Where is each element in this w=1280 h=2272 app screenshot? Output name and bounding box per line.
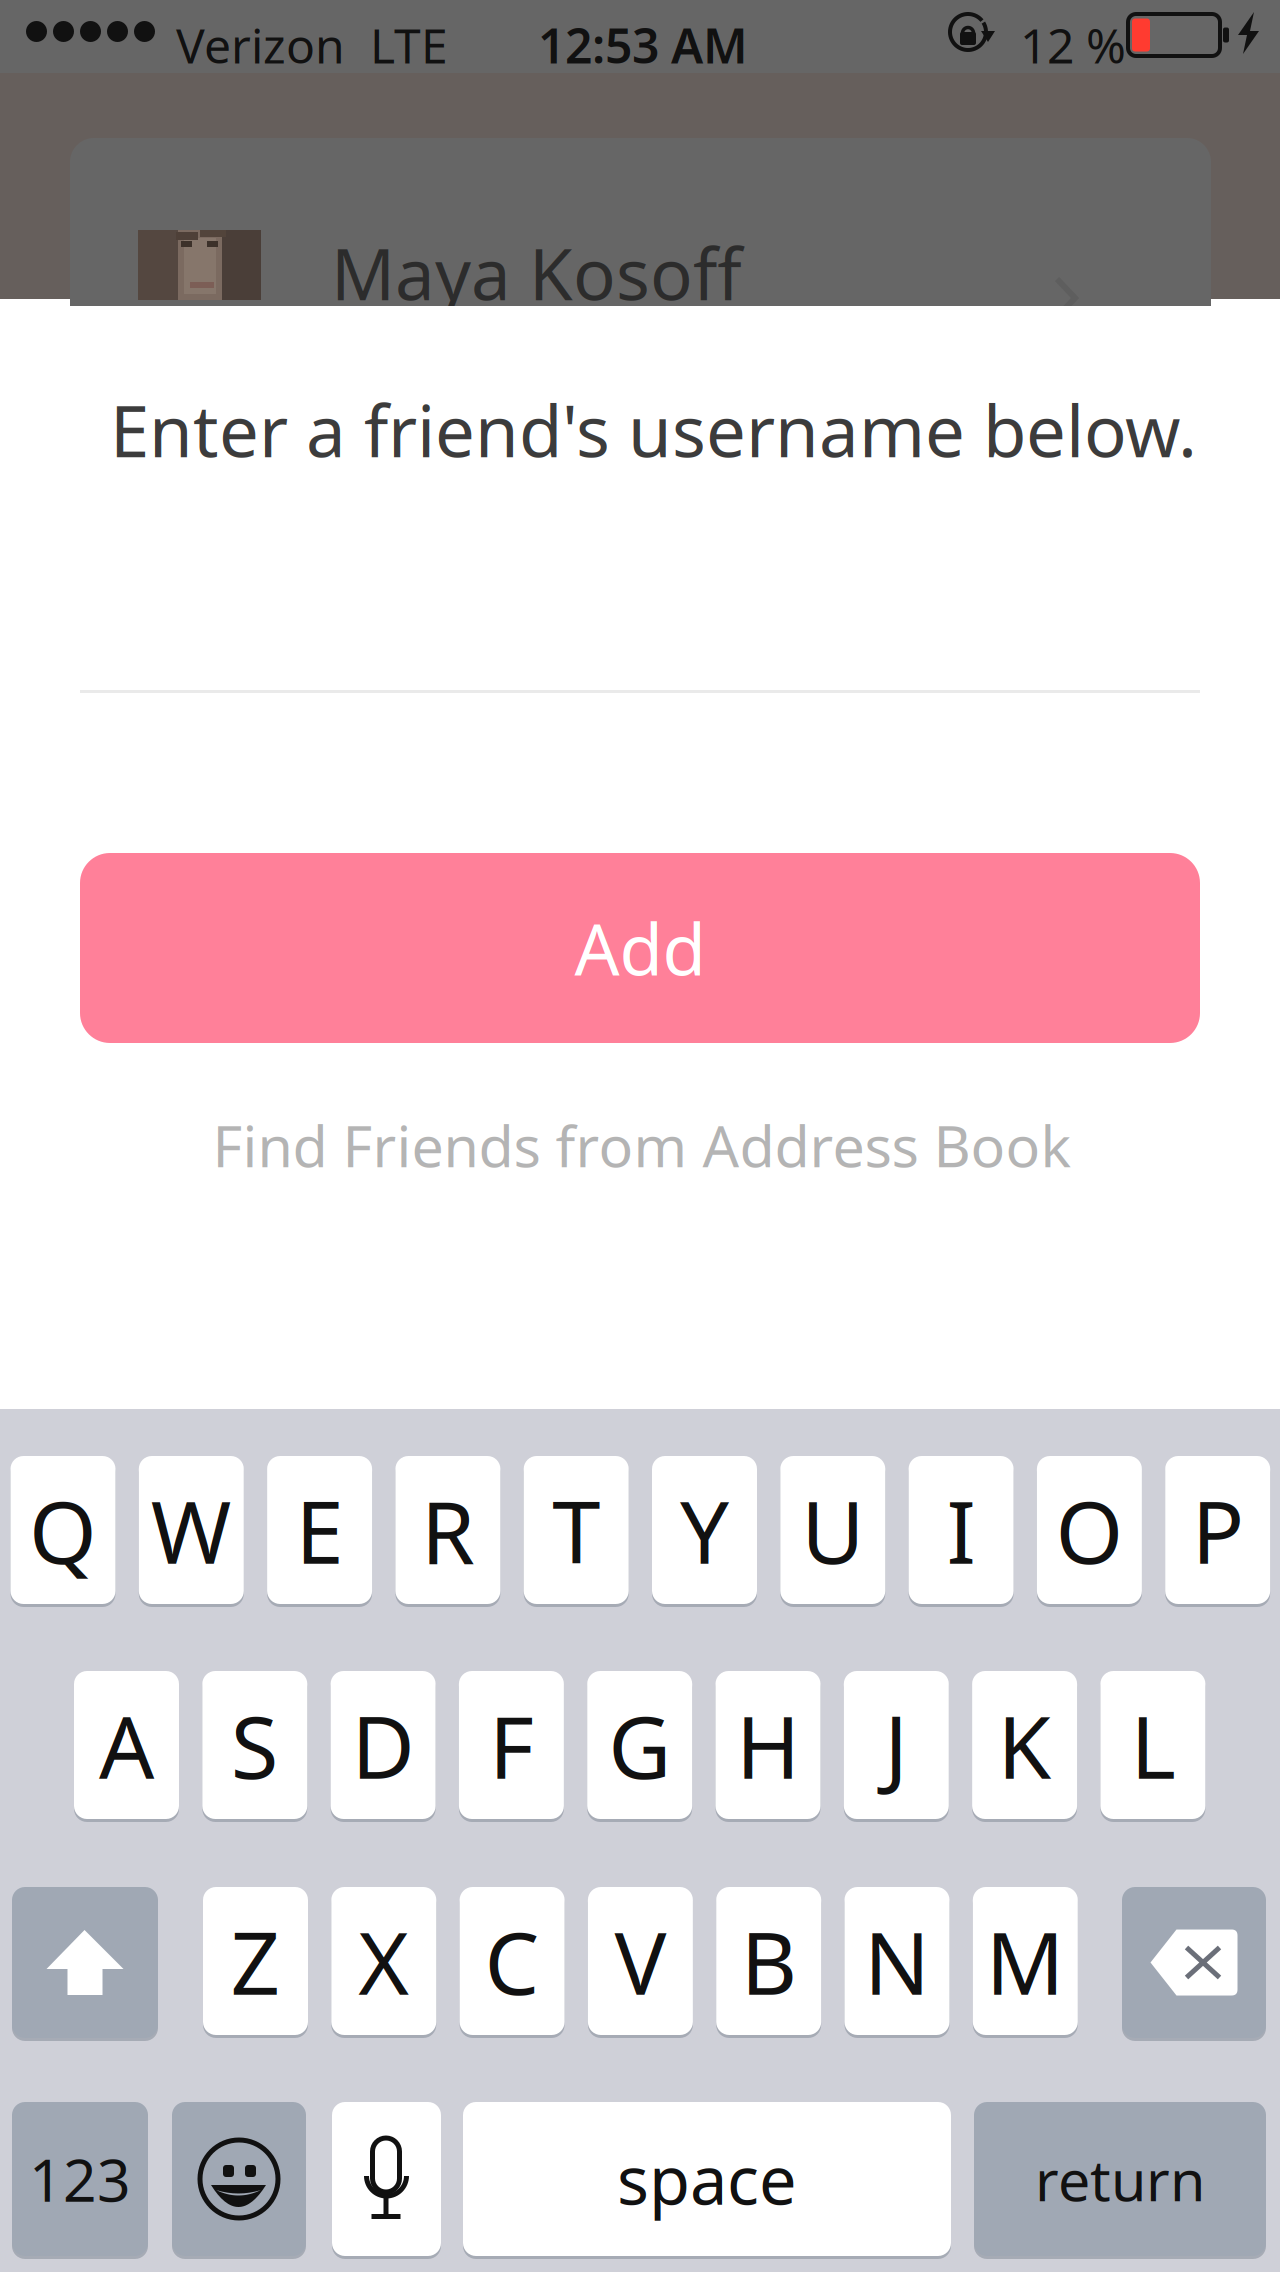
staticText: O <box>1055 1472 1123 1588</box>
button[interactable]: Y <box>652 1456 757 1604</box>
staticText: L <box>1130 1687 1175 1803</box>
staticText: P <box>1192 1472 1244 1588</box>
staticText: D <box>352 1687 415 1803</box>
staticText: W <box>151 1472 232 1588</box>
button[interactable]: F <box>459 1671 564 1819</box>
button[interactable]: I <box>909 1456 1014 1604</box>
staticText: Y <box>680 1472 729 1588</box>
button[interactable]: L <box>1100 1671 1205 1819</box>
staticText: Maya Kosoff <box>331 226 742 320</box>
staticText: M <box>986 1903 1065 2019</box>
button[interactable]: S <box>202 1671 307 1819</box>
button[interactable]: T <box>524 1456 629 1604</box>
button[interactable]: Dictation <box>332 2102 441 2256</box>
button[interactable]: K <box>972 1671 1077 1819</box>
button[interactable]: Find Friends from Address Book <box>212 1102 1072 1188</box>
staticText: Verizon <box>176 13 345 77</box>
button[interactable]: D <box>331 1671 436 1819</box>
staticText: B <box>741 1903 797 2019</box>
staticText: X <box>358 1903 409 2019</box>
staticText: LTE <box>370 13 448 77</box>
button[interactable]: U <box>780 1456 885 1604</box>
button[interactable]: P <box>1165 1456 1270 1604</box>
button[interactable]: Shift <box>12 1887 158 2038</box>
staticText: space <box>617 2135 797 2223</box>
staticText: Find Friends from Address Book <box>212 1107 1071 1183</box>
button[interactable]: Z <box>203 1887 308 2035</box>
button[interactable]: Add <box>80 853 1200 1043</box>
staticText: E <box>296 1472 344 1588</box>
staticText: A <box>99 1687 154 1803</box>
staticText: return <box>1035 2141 1205 2217</box>
button[interactable]: Q <box>10 1456 115 1604</box>
staticText: S <box>231 1687 279 1803</box>
button[interactable]: Return <box>974 2102 1266 2256</box>
button[interactable]: B <box>716 1887 821 2035</box>
button[interactable]: H <box>715 1671 820 1819</box>
button[interactable]: G <box>587 1671 692 1819</box>
button[interactable]: N <box>844 1887 949 2035</box>
button[interactable]: Delete <box>1122 1887 1266 2038</box>
button[interactable]: Emoji <box>172 2102 306 2256</box>
staticText: 12 % <box>1020 13 1126 77</box>
button[interactable]: J <box>844 1671 949 1819</box>
button[interactable]: O <box>1037 1456 1142 1604</box>
staticText: U <box>801 1472 864 1588</box>
button[interactable]: R <box>395 1456 500 1604</box>
staticText: J <box>884 1687 908 1803</box>
staticText: 123 <box>29 2140 131 2218</box>
staticText: R <box>421 1472 475 1588</box>
staticText: K <box>998 1687 1052 1803</box>
button[interactable]: Numbers <box>12 2102 148 2256</box>
button[interactable]: X <box>331 1887 436 2035</box>
staticText: Enter a friend's username below. <box>110 383 1197 477</box>
staticText: H <box>736 1687 800 1803</box>
button[interactable]: M <box>973 1887 1078 2035</box>
button[interactable]: E <box>267 1456 372 1604</box>
staticText: F <box>489 1687 534 1803</box>
staticText: C <box>485 1903 540 2019</box>
staticText: Add <box>574 901 705 995</box>
button[interactable]: W <box>139 1456 244 1604</box>
staticText: N <box>864 1903 930 2019</box>
button[interactable]: V <box>588 1887 693 2035</box>
staticText: Z <box>230 1903 280 2019</box>
button[interactable]: A <box>74 1671 179 1819</box>
staticText: T <box>552 1472 600 1588</box>
button[interactable]: C <box>460 1887 565 2035</box>
staticText: Q <box>29 1472 97 1588</box>
staticText: 12:53 AM <box>538 13 748 77</box>
staticText: V <box>614 1903 666 2019</box>
staticText: G <box>608 1687 671 1803</box>
staticText: I <box>947 1472 976 1588</box>
button[interactable]: Space <box>463 2102 951 2256</box>
